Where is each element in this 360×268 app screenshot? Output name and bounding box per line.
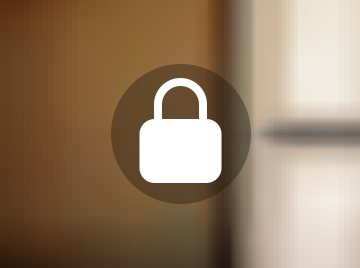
button[interactable]: Locked content	[111, 64, 251, 204]
